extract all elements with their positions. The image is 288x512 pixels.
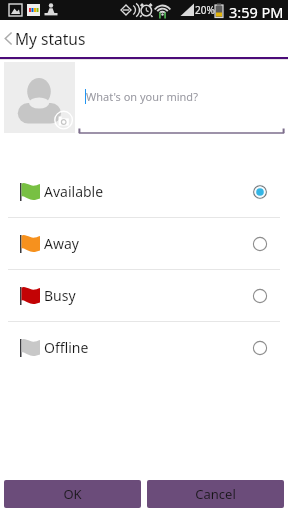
button[interactable]: Busy: [0, 270, 288, 321]
button[interactable]: Change profile photo: [4, 62, 75, 133]
staticText: What's on your mind?: [86, 89, 198, 104]
button[interactable]: Back: [0, 20, 288, 56]
staticText: Cancel: [195, 485, 236, 503]
staticText: Away: [44, 234, 79, 253]
staticText: Available: [44, 182, 104, 201]
staticText: Offline: [44, 338, 89, 357]
button[interactable]: Cancel: [147, 480, 284, 508]
button[interactable]: Away: [0, 218, 288, 269]
staticText: OK: [63, 485, 82, 503]
staticText: 3:59 PM: [229, 2, 284, 22]
staticText: Busy: [44, 286, 76, 305]
staticText: My status: [15, 28, 86, 49]
staticText: 20%: [195, 3, 215, 17]
other: Back: [4, 32, 12, 45]
button[interactable]: Available: [0, 166, 288, 217]
button[interactable]: OK: [4, 480, 141, 508]
button[interactable]: Offline: [0, 322, 288, 373]
